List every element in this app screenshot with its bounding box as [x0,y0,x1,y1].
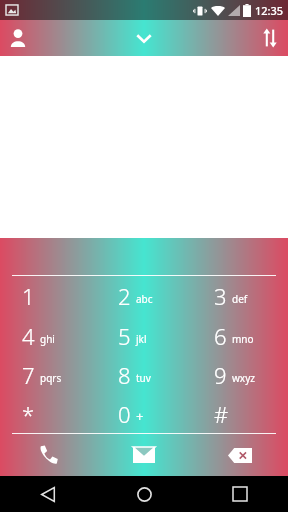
button[interactable]: Backspace [192,434,288,476]
staticText: + [136,407,144,425]
staticText: abc [136,292,153,306]
staticText: 4 [22,321,35,351]
button[interactable]: * [0,394,96,433]
button[interactable]: 3 [192,276,288,316]
button[interactable]: Sort [252,20,288,56]
button[interactable]: 0 [96,394,192,433]
staticText: 8 [118,360,131,390]
staticText: 12:35 [255,3,284,18]
staticText: 2 [118,281,131,311]
staticText: 6 [214,321,227,351]
button[interactable]: Contacts [0,20,36,56]
staticText: 3 [214,281,227,311]
button[interactable]: 7 [0,355,96,394]
staticText: 7 [22,360,35,390]
button[interactable]: # [192,394,288,433]
staticText: mno [232,332,254,346]
staticText: def [232,292,248,306]
staticText: 0 [118,399,131,429]
button[interactable]: Back [0,476,96,512]
staticText: 1 [22,281,35,311]
button[interactable]: Recents [192,476,288,512]
staticText: wxyz [232,371,255,385]
button[interactable]: Call [0,434,96,476]
staticText: * [22,399,35,429]
staticText: 9 [214,360,227,390]
staticText: pqrs [40,371,62,385]
staticText: tuv [136,371,151,385]
button[interactable]: 5 [96,316,192,355]
button[interactable]: Expand [126,20,162,56]
button[interactable]: 9 [192,355,288,394]
staticText: # [214,399,229,429]
staticText: ghi [40,332,55,346]
button[interactable]: 1 [0,276,96,316]
staticText: jkl [136,332,147,346]
button[interactable]: 4 [0,316,96,355]
button[interactable]: Message [96,434,192,476]
button[interactable]: 2 [96,276,192,316]
button[interactable]: 8 [96,355,192,394]
button[interactable]: 6 [192,316,288,355]
button[interactable]: Home [96,476,192,512]
staticText: 5 [118,321,131,351]
